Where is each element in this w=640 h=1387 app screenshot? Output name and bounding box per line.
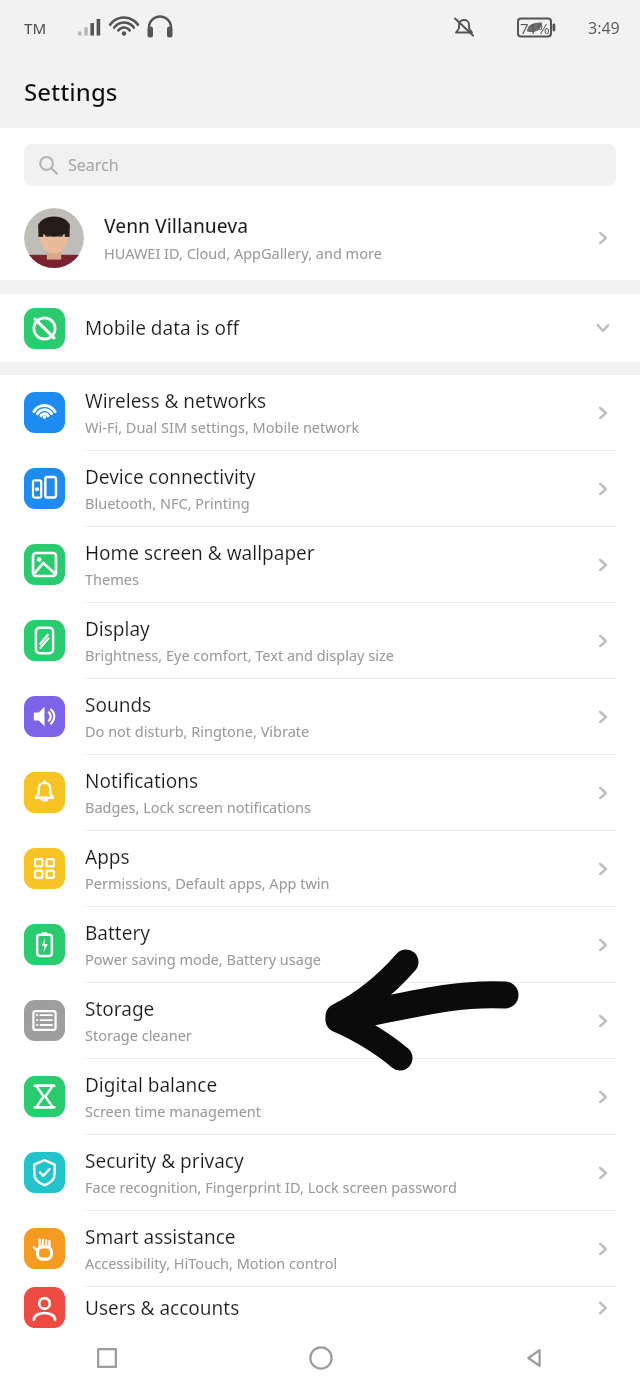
staticText: Screen time management: [85, 1101, 261, 1121]
button[interactable]: Home screen & wallpaper: [0, 527, 640, 602]
button[interactable]: Venn Villanueva: [0, 200, 640, 276]
button[interactable]: Battery: [0, 907, 640, 982]
button[interactable]: Notifications: [0, 755, 640, 830]
staticText: Permissions, Default apps, App twin: [85, 873, 330, 893]
button[interactable]: Storage: [0, 983, 640, 1058]
staticText: Settings: [24, 75, 118, 108]
staticText: Badges, Lock screen notifications: [85, 797, 311, 817]
button[interactable]: Home: [214, 1328, 427, 1387]
staticText: Mobile data is off: [85, 315, 590, 341]
staticText: Security & privacy: [85, 1148, 244, 1174]
staticText: Wi-Fi, Dual SIM settings, Mobile network: [85, 417, 360, 437]
staticText: Display: [85, 616, 150, 642]
staticText: Bluetooth, NFC, Printing: [85, 493, 250, 513]
staticText: Brightness, Eye comfort, Text and displa…: [85, 645, 394, 665]
staticText: Battery: [85, 920, 150, 946]
staticText: Device connectivity: [85, 464, 256, 490]
button[interactable]: Back: [427, 1328, 640, 1387]
button[interactable]: Digital balance: [0, 1059, 640, 1134]
staticText: Apps: [85, 844, 130, 870]
staticText: Storage cleaner: [85, 1025, 192, 1045]
staticText: TM: [24, 18, 47, 38]
button[interactable]: Recent apps: [0, 1328, 214, 1387]
button[interactable]: Device connectivity: [0, 451, 640, 526]
button[interactable]: Users & accounts: [0, 1287, 640, 1328]
button[interactable]: Apps: [0, 831, 640, 906]
button[interactable]: Mobile data is off: [0, 294, 640, 362]
button[interactable]: Security & privacy: [0, 1135, 640, 1210]
staticText: Digital balance: [85, 1072, 218, 1098]
button[interactable]: Display: [0, 603, 640, 678]
staticText: Venn Villanueva: [104, 213, 249, 239]
staticText: HUAWEI ID, Cloud, AppGallery, and more: [104, 243, 382, 263]
staticText: Power saving mode, Battery usage: [85, 949, 322, 969]
button[interactable]: Sounds: [0, 679, 640, 754]
staticText: 71%: [520, 18, 550, 38]
staticText: Storage: [85, 996, 155, 1022]
staticText: Users & accounts: [85, 1295, 240, 1321]
staticText: Face recognition, Fingerprint ID, Lock s…: [85, 1177, 457, 1197]
staticText: Home screen & wallpaper: [85, 540, 315, 566]
staticText: 3:49: [588, 17, 620, 39]
staticText: Search: [68, 154, 119, 176]
staticText: Themes: [85, 569, 139, 589]
staticText: Accessibility, HiTouch, Motion control: [85, 1253, 338, 1273]
staticText: Wireless & networks: [85, 388, 267, 414]
staticText: Sounds: [85, 692, 152, 718]
staticText: Do not disturb, Ringtone, Vibrate: [85, 721, 310, 741]
button[interactable]: Smart assistance: [0, 1211, 640, 1286]
button[interactable]: Wireless & networks: [0, 375, 640, 450]
staticText: Smart assistance: [85, 1224, 236, 1250]
button[interactable]: Search: [24, 144, 616, 186]
staticText: Notifications: [85, 768, 199, 794]
